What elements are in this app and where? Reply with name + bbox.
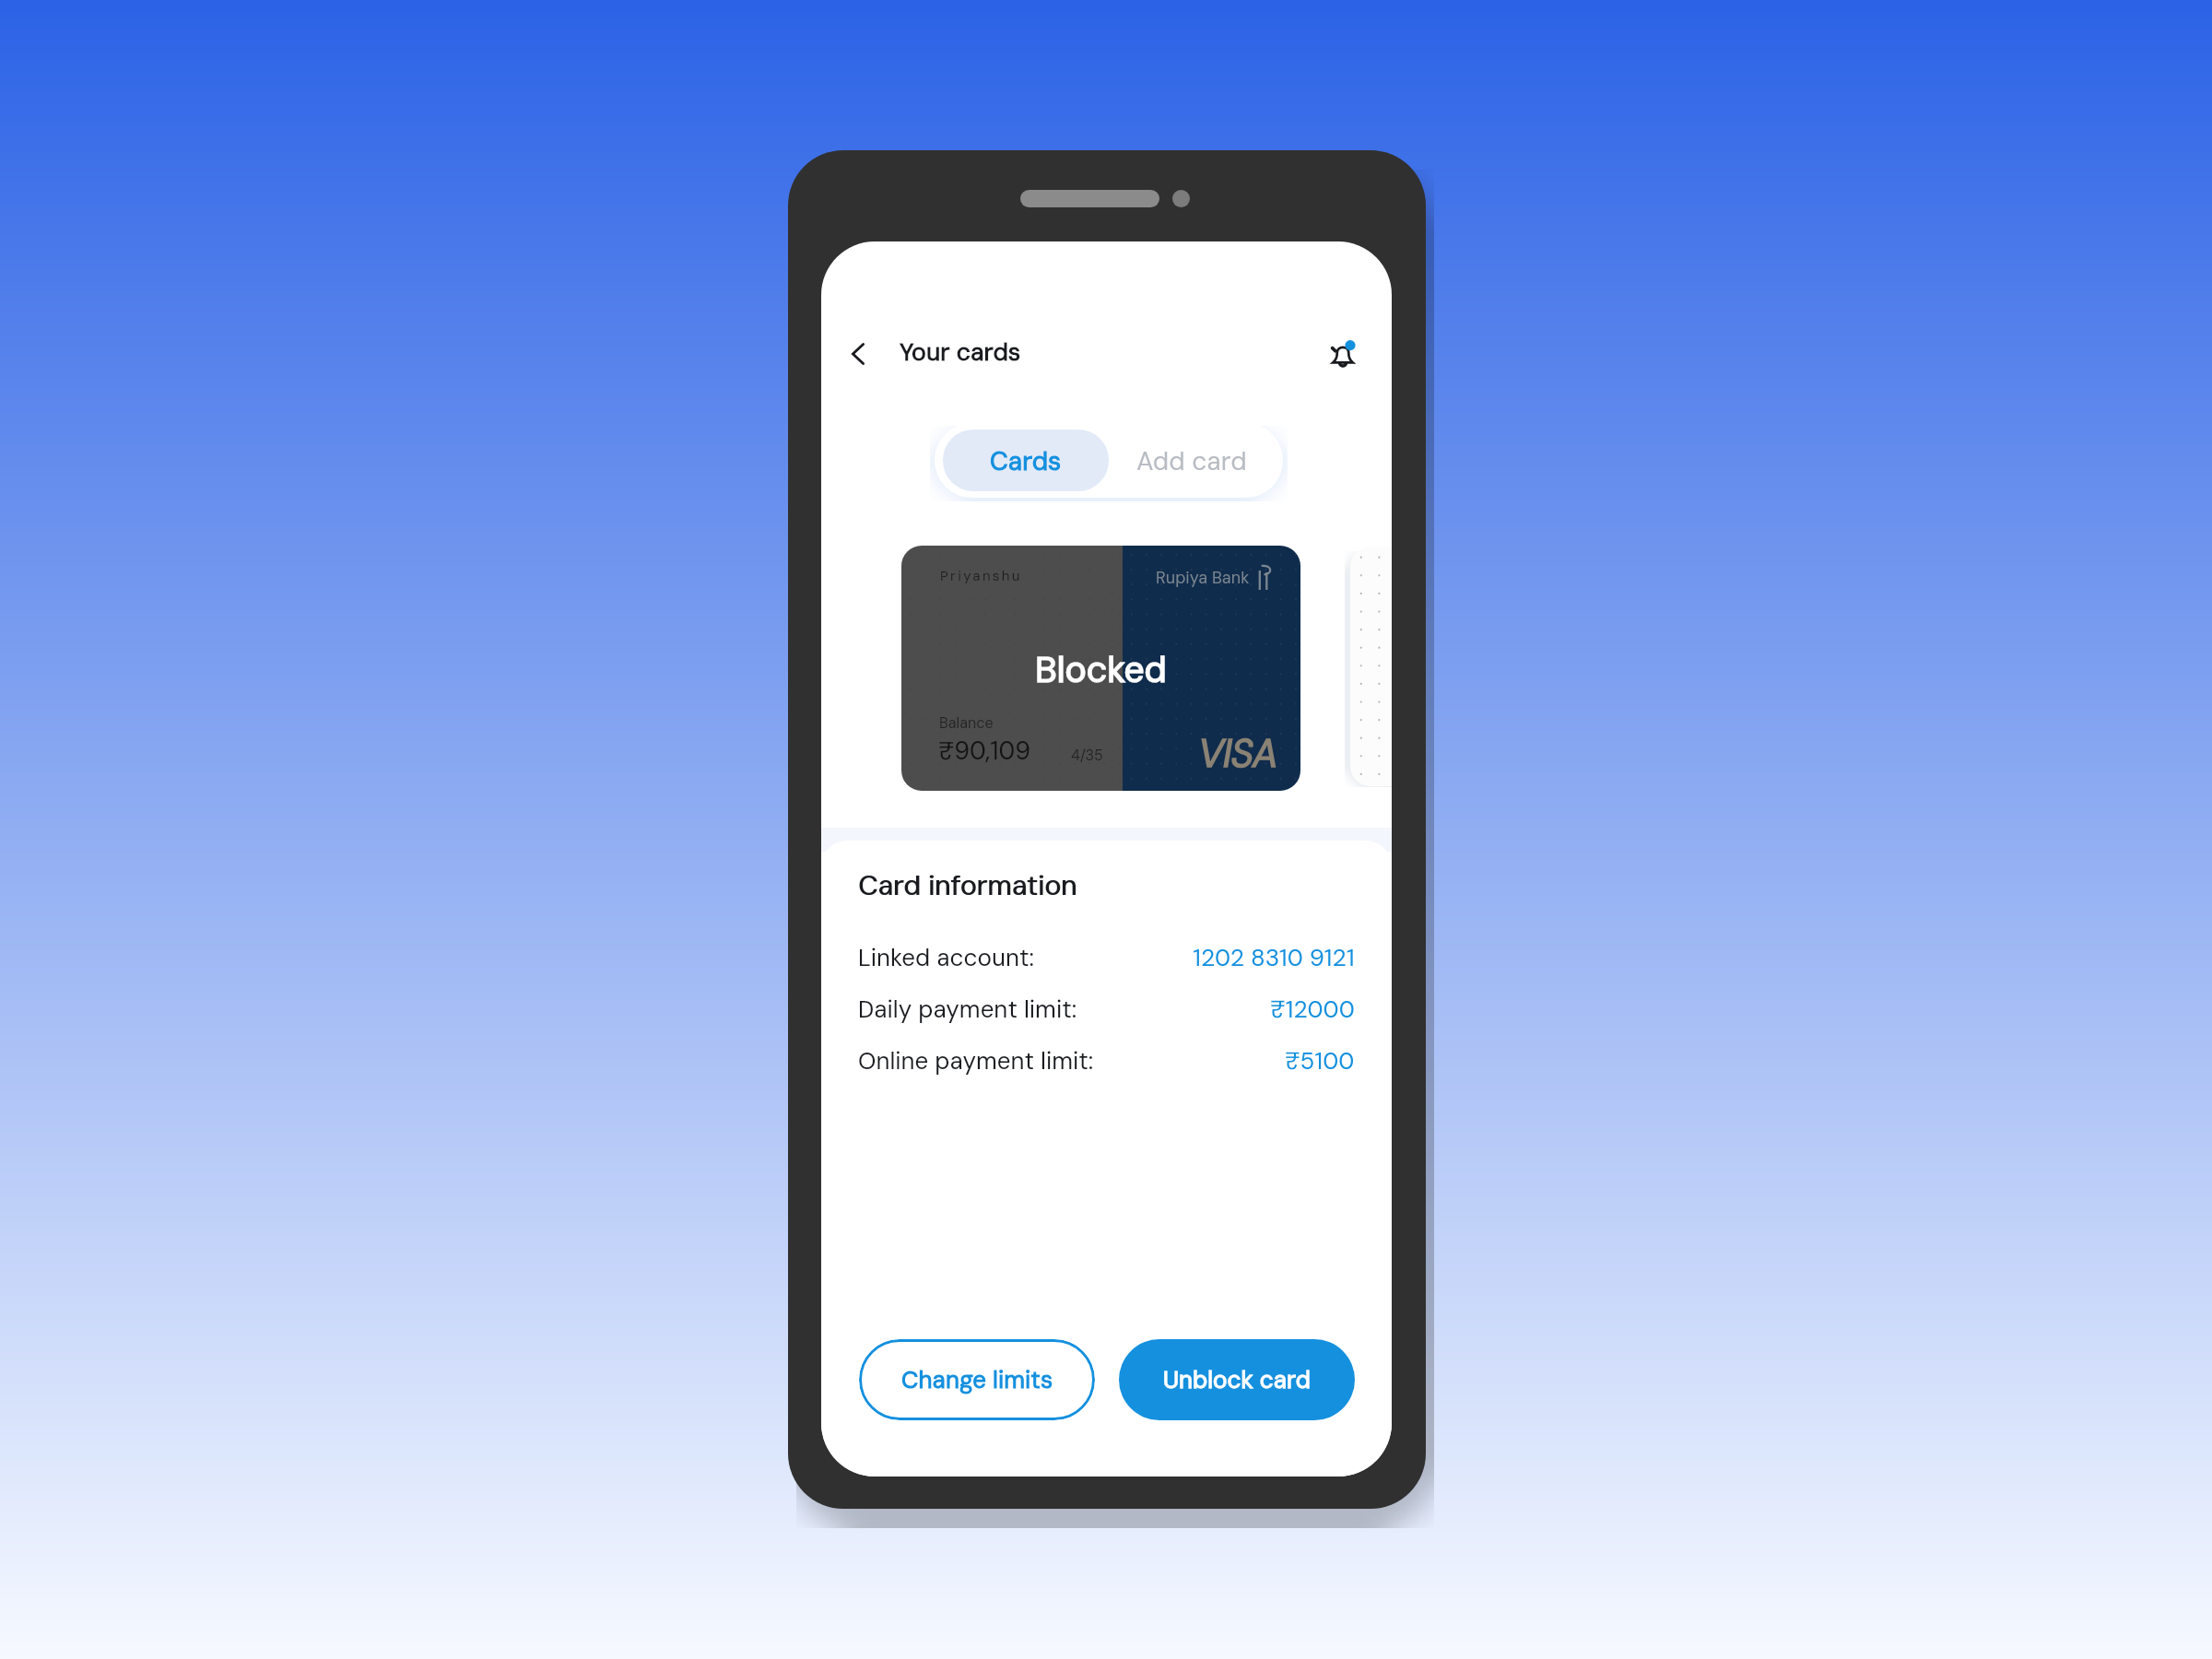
staticText: VISA bbox=[1198, 728, 1277, 779]
staticText: Blocked bbox=[1035, 646, 1167, 693]
staticText: 4/35 bbox=[1071, 746, 1103, 765]
staticText: Unblock card bbox=[1163, 1364, 1311, 1395]
button[interactable]: Back bbox=[836, 332, 880, 376]
staticText: Card information bbox=[858, 867, 1077, 903]
button[interactable]: Cards bbox=[943, 429, 1109, 491]
staticText: Online payment limit: bbox=[858, 1045, 1094, 1077]
staticText: Your cards bbox=[900, 336, 1021, 369]
staticText: ₹90,109 bbox=[938, 735, 1031, 767]
button[interactable]: Notifications bbox=[1321, 331, 1365, 375]
button[interactable]: Priyanshu bbox=[901, 546, 1300, 791]
staticText: ₹12000 bbox=[1270, 994, 1355, 1025]
staticText: Linked account: bbox=[858, 942, 1035, 973]
staticText: Priyanshu bbox=[940, 567, 1022, 585]
staticText: Daily payment limit: bbox=[858, 994, 1077, 1025]
button[interactable]: Change limits bbox=[859, 1339, 1095, 1420]
staticText: Balance bbox=[939, 713, 994, 733]
button[interactable]: Add card bbox=[1109, 429, 1275, 491]
staticText: Cards bbox=[990, 444, 1062, 477]
staticText: 1202 8310 9121 bbox=[1193, 942, 1355, 973]
staticText: Rupiya Bank bbox=[1156, 567, 1250, 588]
button[interactable]: Unblock card bbox=[1119, 1339, 1355, 1420]
staticText: Card information bbox=[859, 867, 1078, 903]
staticText: Add card bbox=[1136, 444, 1247, 477]
staticText: ₹5100 bbox=[1285, 1045, 1355, 1077]
staticText: Change limits bbox=[901, 1364, 1053, 1395]
